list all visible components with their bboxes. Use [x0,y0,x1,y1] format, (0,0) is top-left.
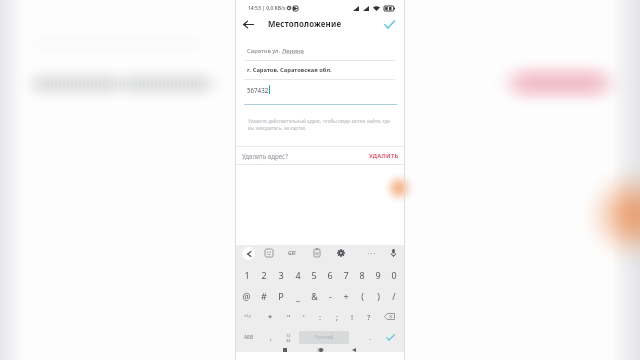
staticText: & [311,290,318,302]
staticText: 34 [286,338,291,343]
staticText: 8 [359,269,365,281]
staticText: Ленина [282,47,304,55]
staticText: - [329,290,332,302]
button[interactable]: - [322,285,338,306]
staticText: ) [377,290,380,302]
staticText: Р [278,290,284,302]
staticText: 6 [327,269,333,281]
staticText: 9 [375,269,381,281]
staticText: ' [303,312,305,322]
button[interactable]: 5 [306,264,322,285]
staticText: # [261,290,267,302]
button[interactable]: 0 [386,264,402,285]
staticText: 14:53 | 0,0 KB/s [248,5,286,12]
staticText: ? [367,312,371,322]
staticText: Местоположение [268,19,342,30]
button[interactable]: Key : [313,306,328,327]
button[interactable]: Symbols [238,306,258,327]
staticText: @ [242,290,251,302]
staticText: " [287,312,291,322]
staticText: 12 [286,333,291,338]
button[interactable]: Back [347,348,361,352]
staticText: + [343,290,349,302]
button[interactable]: 3 [272,264,289,285]
staticText: г. Саратов, Саратовская обл. [247,66,332,74]
staticText: , [270,333,272,343]
button[interactable]: Key ; [330,306,345,327]
staticText: 5 [311,269,317,281]
button[interactable]: Key ' [296,306,311,327]
staticText: ! [351,312,354,322]
button[interactable]: Recents [278,348,292,352]
button[interactable]: 1 [238,264,255,285]
staticText: УДАЛИТЬ [369,152,399,160]
staticText: =\< [244,313,252,320]
button[interactable]: Voice input [385,245,401,261]
button[interactable]: Key ! [345,306,360,327]
button[interactable]: / [386,285,402,306]
staticText: 3 [278,269,284,281]
button[interactable]: Key ? [361,306,376,327]
button[interactable]: Key " [281,306,296,327]
button[interactable]: 6 [322,264,338,285]
button[interactable]: УДАЛИТЬ [369,152,399,160]
button[interactable]: Enter [381,327,399,348]
button[interactable]: Comma [264,327,278,348]
button[interactable]: Switch to letters [238,327,260,348]
button[interactable]: 9 [370,264,386,285]
button[interactable]: Back [239,16,257,33]
staticText: 0 [391,269,397,281]
staticText: 7 [343,269,349,281]
button[interactable]: ) [370,285,386,306]
button[interactable]: Save [379,16,399,33]
button[interactable]: _ [289,285,306,306]
staticText: ; [336,312,339,322]
staticText: АБВ [244,334,254,341]
staticText: 567432 [247,86,269,94]
button[interactable]: @ [238,285,255,306]
staticText: GIF [288,250,296,257]
button[interactable]: + [338,285,354,306]
staticText: 4 [295,269,301,281]
button[interactable]: Backspace [379,306,399,327]
staticText: _ [296,290,300,302]
button[interactable]: Clipboard [309,245,325,261]
staticText: * [268,312,273,322]
button[interactable]: Key * [263,306,278,327]
staticText: Укажите действительный адрес, чтобы люди… [248,118,394,132]
button[interactable]: Русский [299,331,349,344]
staticText: 1 [244,269,250,281]
button[interactable]: Home [313,348,327,352]
staticText: ( [361,290,364,302]
button[interactable]: Collapse [240,245,256,261]
button[interactable]: # [255,285,272,306]
button[interactable]: 4 [289,264,306,285]
staticText: Удалить адрес? [242,152,288,160]
staticText: Русский [315,334,334,341]
button[interactable]: More options [363,245,379,261]
button[interactable]: 8 [354,264,370,285]
staticText: / [392,290,396,302]
button[interactable]: Р [272,285,289,306]
staticText: : [319,312,322,322]
button[interactable]: GIF [284,245,300,261]
staticText: Саратов ул. [247,47,282,55]
button[interactable]: Stickers [261,245,277,261]
button[interactable]: ( [354,285,370,306]
button[interactable]: 7 [338,264,354,285]
button[interactable]: Settings [333,245,349,261]
staticText: . [369,333,371,343]
button[interactable]: & [306,285,322,306]
button[interactable]: Numbers [280,327,296,348]
button[interactable]: Period [363,327,377,348]
staticText: 2 [261,269,267,281]
button[interactable]: 2 [255,264,272,285]
